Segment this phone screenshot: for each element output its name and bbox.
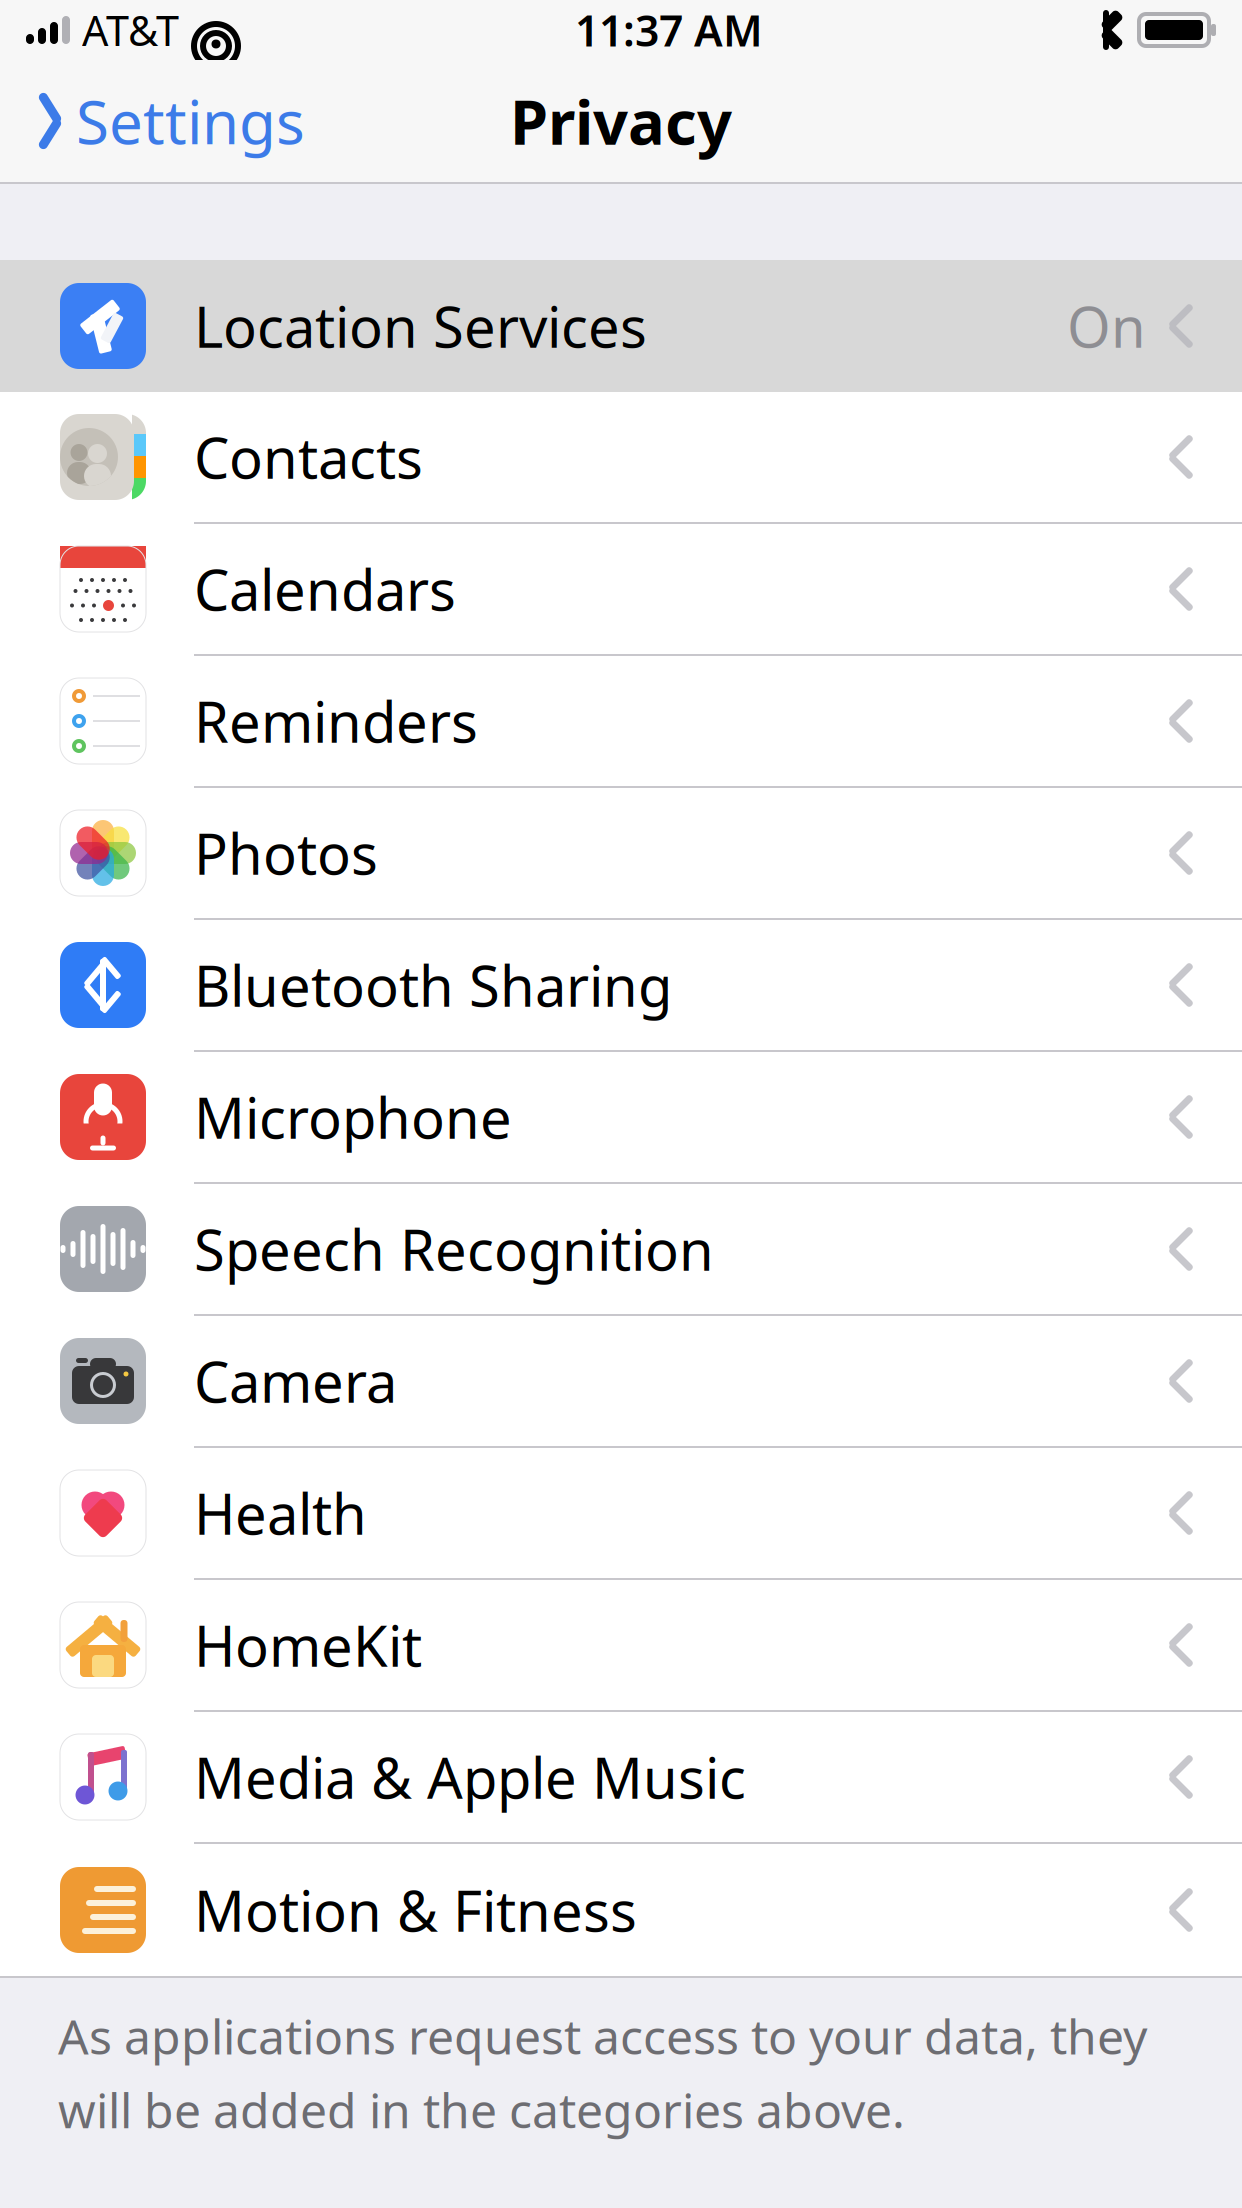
staticText: Bluetooth Sharing [194,948,672,1022]
button[interactable]: Bluetooth Sharing [0,920,1242,1052]
staticText: Motion & Fitness [194,1873,637,1947]
button[interactable]: Location Services [0,260,1242,392]
button[interactable]: Settings [0,67,305,175]
button[interactable]: Photos [0,788,1242,920]
staticText: Media & Apple Music [194,1740,746,1814]
staticText: Microphone [194,1080,512,1154]
staticText: Speech Recognition [194,1212,714,1286]
staticText: On [1067,289,1146,363]
button[interactable]: Reminders [0,656,1242,788]
staticText: Camera [194,1344,397,1418]
button[interactable]: Health [0,1448,1242,1580]
staticText: Calendars [194,552,456,626]
staticText: Contacts [194,420,423,494]
staticText: Privacy [510,80,732,162]
staticText: 11:37 AM [575,2,763,58]
button[interactable]: Calendars [0,524,1242,656]
button[interactable]: Contacts [0,392,1242,524]
button[interactable]: Speech Recognition [0,1184,1242,1316]
button[interactable]: Microphone [0,1052,1242,1184]
button[interactable]: Camera [0,1316,1242,1448]
staticText: Settings [76,81,305,161]
button[interactable]: Media & Apple Music [0,1712,1242,1844]
staticText: Reminders [194,684,478,758]
staticText: AT&T [82,3,179,57]
button[interactable]: Motion & Fitness [0,1844,1242,1976]
staticText: HomeKit [194,1608,422,1682]
staticText: Health [194,1476,367,1550]
button[interactable]: HomeKit [0,1580,1242,1712]
staticText: Location Services [194,289,647,363]
staticText: As applications request access to your d… [58,2004,1147,2141]
staticText: Photos [194,816,378,890]
